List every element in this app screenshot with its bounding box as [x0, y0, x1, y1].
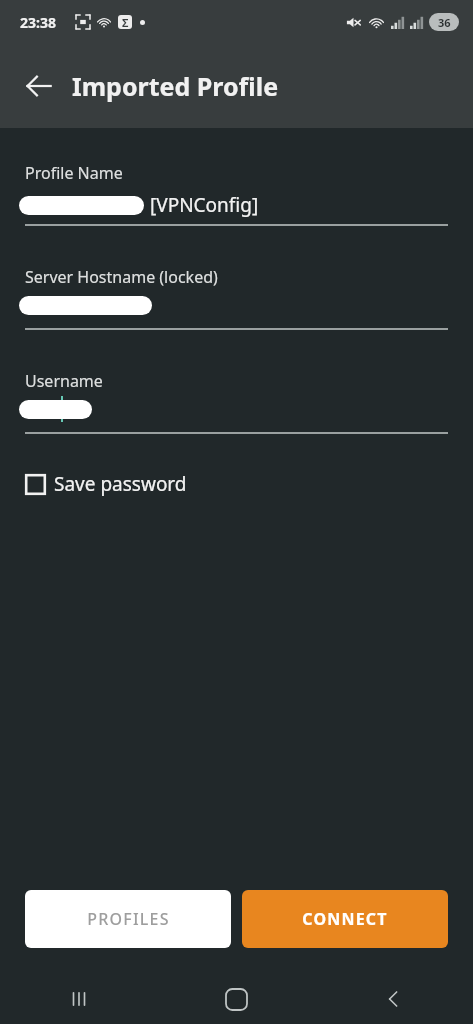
staticText: Σ — [122, 15, 129, 29]
staticText: PROFILES — [87, 908, 170, 930]
staticText: [VPNConfig] — [150, 192, 259, 218]
button[interactable]: Server Hostname (locked) — [25, 266, 448, 330]
staticText: Save password — [54, 471, 187, 497]
staticText: 36 — [438, 15, 451, 30]
button[interactable]: Back — [315, 974, 473, 1024]
button[interactable]: CONNECT — [242, 890, 448, 948]
button[interactable]: Recents — [0, 974, 157, 1024]
button[interactable]: PROFILES — [25, 890, 231, 948]
button[interactable]: Save password — [25, 471, 187, 497]
staticText: 23:38 — [20, 13, 56, 32]
button[interactable]: Profile Name — [25, 162, 448, 226]
button[interactable]: Username — [25, 370, 448, 434]
button[interactable]: Back — [16, 63, 62, 109]
button[interactable]: Home — [157, 974, 315, 1024]
staticText: CONNECT — [302, 908, 388, 930]
staticText: Imported Profile — [72, 69, 279, 103]
staticText: Username — [25, 370, 103, 392]
staticText: Server Hostname (locked) — [25, 266, 218, 288]
staticText: Profile Name — [25, 162, 123, 184]
